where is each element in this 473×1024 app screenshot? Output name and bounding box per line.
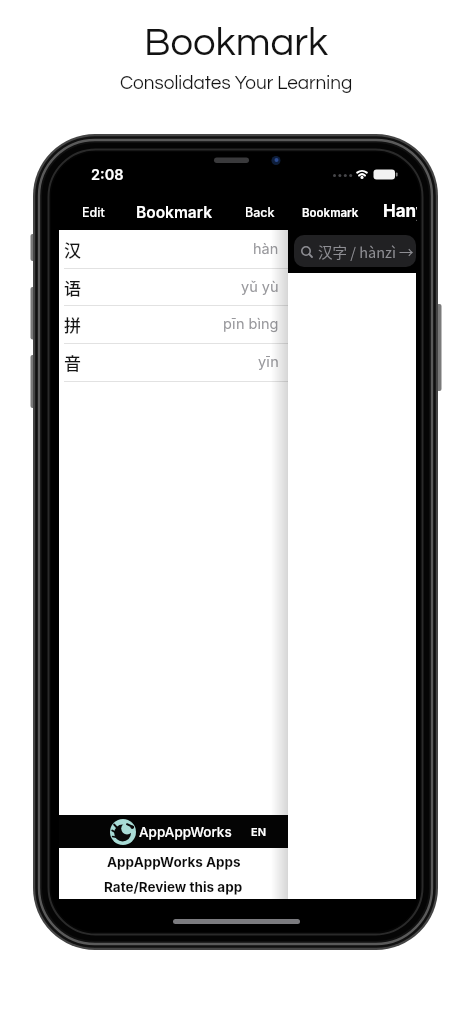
button[interactable]: 拼 <box>59 305 288 343</box>
button[interactable]: 汉字 / hànzì → <box>294 235 416 267</box>
staticText: yǔ yù <box>241 278 279 296</box>
staticText: Bookmark <box>136 203 212 222</box>
staticText: Bookmark <box>144 22 329 63</box>
button[interactable]: Rate/Review this app <box>59 874 288 899</box>
staticText: Back <box>245 205 275 220</box>
staticText: Hanyu <box>383 201 417 222</box>
staticText: Consolidates Your Learning <box>120 73 353 93</box>
staticText: 2:08 <box>91 166 124 183</box>
staticText: AppAppWorks <box>139 824 232 840</box>
button[interactable]: 音 <box>59 343 288 381</box>
staticText: Rate/Review this app <box>104 879 243 895</box>
staticText: 汉字 / hànzì → <box>318 241 414 262</box>
staticText: 汉 <box>64 237 81 262</box>
button[interactable]: AppAppWorks Apps <box>59 849 288 875</box>
button[interactable]: 语 <box>59 268 288 306</box>
staticText: 拼 <box>64 312 81 337</box>
staticText: Bookmark <box>302 206 359 220</box>
staticText: AppAppWorks Apps <box>107 854 241 870</box>
staticText: pīn bìng <box>223 315 279 333</box>
button[interactable]: Back <box>238 200 282 225</box>
staticText: 语 <box>64 275 81 300</box>
staticText: Edit <box>82 205 105 220</box>
button[interactable]: AppAppWorks <box>59 815 288 848</box>
button[interactable]: 汉 <box>59 230 288 268</box>
staticText: yīn <box>258 353 279 371</box>
staticText: EN <box>251 825 267 838</box>
button[interactable]: Edit <box>72 200 114 225</box>
staticText: 音 <box>64 350 81 375</box>
staticText: hàn <box>253 240 279 258</box>
